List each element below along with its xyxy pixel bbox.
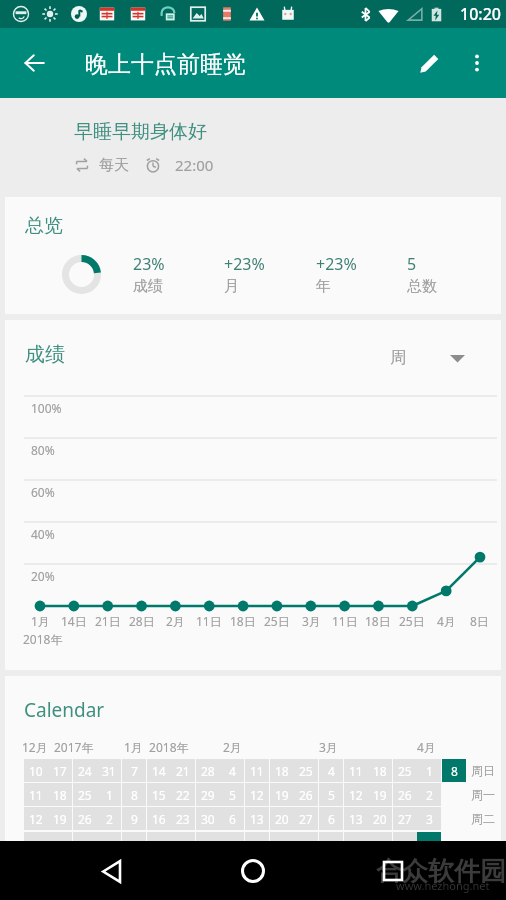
staticText: 16 bbox=[152, 811, 166, 827]
staticText: 15 bbox=[152, 787, 166, 803]
staticText: 11 bbox=[250, 763, 264, 779]
staticText: 2月 bbox=[166, 613, 185, 629]
staticText: 26 bbox=[78, 811, 92, 827]
staticText: 29 bbox=[201, 787, 215, 803]
button[interactable]: Back bbox=[90, 849, 134, 893]
staticText: 20 bbox=[373, 811, 387, 827]
staticText: 合众软件园 bbox=[376, 855, 506, 888]
staticText: 21 bbox=[176, 763, 190, 779]
staticText: 14日 bbox=[61, 613, 87, 629]
staticText: 18日 bbox=[230, 613, 256, 629]
staticText: 23% bbox=[133, 253, 165, 275]
staticText: 1 bbox=[426, 763, 433, 779]
staticText: 13 bbox=[250, 811, 264, 827]
staticText: 5 bbox=[407, 253, 417, 275]
staticText: 成绩 bbox=[133, 277, 163, 296]
staticText: 6 bbox=[229, 811, 236, 827]
staticText: 年 bbox=[316, 277, 331, 296]
staticText: 27 bbox=[398, 811, 412, 827]
button[interactable]: 周 bbox=[385, 341, 470, 375]
staticText: 5 bbox=[328, 787, 335, 803]
staticText: 周日 bbox=[471, 763, 495, 778]
staticText: 18 bbox=[275, 763, 289, 779]
button[interactable]: Recents bbox=[371, 849, 415, 893]
staticText: 20% bbox=[31, 568, 55, 584]
staticText: 14 bbox=[152, 763, 166, 779]
staticText: 每天 bbox=[99, 156, 129, 175]
staticText: 12月 2017年 bbox=[22, 739, 94, 755]
staticText: 25 bbox=[78, 787, 92, 803]
staticText: 7 bbox=[131, 763, 138, 779]
staticText: 周一 bbox=[471, 787, 495, 802]
staticText: 19 bbox=[275, 787, 289, 803]
staticText: 18日 bbox=[365, 613, 391, 629]
staticText: 6 bbox=[328, 811, 335, 827]
staticText: 3月 bbox=[319, 739, 338, 755]
staticText: 25日 bbox=[264, 613, 290, 629]
staticText: 4 bbox=[328, 763, 335, 779]
button[interactable]: More options bbox=[453, 39, 501, 87]
staticText: 25 bbox=[299, 763, 313, 779]
staticText: 19 bbox=[53, 811, 67, 827]
staticText: 2 bbox=[106, 811, 113, 827]
staticText: 2月 bbox=[223, 739, 242, 755]
staticText: 5 bbox=[229, 787, 236, 803]
staticText: Calendar bbox=[24, 697, 105, 723]
staticText: 23 bbox=[176, 811, 190, 827]
staticText: 总数 bbox=[407, 277, 437, 296]
staticText: 80% bbox=[31, 442, 55, 458]
staticText: 12 bbox=[349, 787, 363, 803]
staticText: 25日 bbox=[399, 613, 425, 629]
staticText: 22 bbox=[176, 787, 190, 803]
staticText: 8 bbox=[131, 787, 138, 803]
staticText: 25 bbox=[398, 763, 412, 779]
staticText: 3 bbox=[426, 811, 433, 827]
staticText: 11 bbox=[29, 787, 43, 803]
staticText: 1 bbox=[106, 787, 113, 803]
staticText: www.hezhong.net bbox=[396, 878, 490, 893]
staticText: 26 bbox=[398, 787, 412, 803]
staticText: 12 bbox=[250, 787, 264, 803]
staticText: 9 bbox=[131, 811, 138, 827]
staticText: +23% bbox=[316, 253, 357, 275]
staticText: 18 bbox=[373, 763, 387, 779]
staticText: 21日 bbox=[95, 613, 121, 629]
staticText: 27 bbox=[299, 811, 313, 827]
staticText: 10:20 bbox=[460, 3, 501, 25]
button[interactable]: Back bbox=[11, 39, 59, 87]
staticText: 4月 bbox=[417, 739, 436, 755]
staticText: 40% bbox=[31, 526, 55, 542]
staticText: 20 bbox=[275, 811, 289, 827]
staticText: +23% bbox=[224, 253, 265, 275]
staticText: 11日 bbox=[332, 613, 358, 629]
staticText: 17 bbox=[53, 763, 67, 779]
staticText: 总览 bbox=[25, 214, 63, 238]
staticText: 1月 bbox=[31, 613, 50, 629]
staticText: 8 bbox=[451, 763, 458, 779]
staticText: 周 bbox=[390, 348, 406, 368]
staticText: 12 bbox=[29, 811, 43, 827]
staticText: 4月 bbox=[437, 613, 456, 629]
staticText: 24 bbox=[78, 763, 92, 779]
staticText: 周二 bbox=[471, 811, 495, 826]
staticText: 晚上十点前睡觉 bbox=[85, 50, 246, 79]
staticText: 2 bbox=[426, 787, 433, 803]
staticText: 3月 bbox=[302, 613, 321, 629]
button[interactable]: Home bbox=[231, 849, 275, 893]
staticText: 4 bbox=[229, 763, 236, 779]
staticText: 13 bbox=[349, 811, 363, 827]
staticText: 10 bbox=[29, 763, 43, 779]
staticText: 31 bbox=[102, 763, 116, 779]
staticText: 2018年 bbox=[23, 631, 63, 647]
staticText: 8日 bbox=[470, 613, 489, 629]
staticText: 26 bbox=[299, 787, 313, 803]
staticText: 100% bbox=[31, 400, 62, 416]
staticText: 30 bbox=[201, 811, 215, 827]
staticText: 1月 2018年 bbox=[124, 739, 189, 755]
staticText: 成绩 bbox=[25, 342, 65, 367]
button[interactable]: Edit bbox=[405, 39, 453, 87]
staticText: 早睡早期身体好 bbox=[74, 120, 207, 144]
staticText: 11日 bbox=[196, 613, 222, 629]
staticText: 月 bbox=[224, 277, 239, 296]
staticText: 18 bbox=[53, 787, 67, 803]
